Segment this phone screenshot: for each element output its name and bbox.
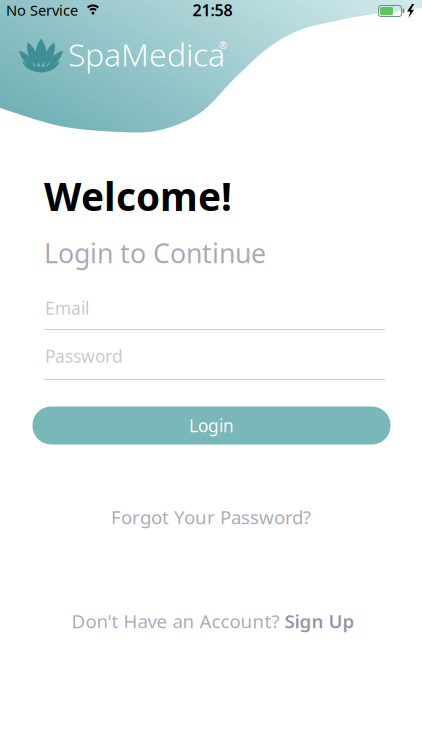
staticText: No Service (6, 0, 78, 20)
staticText: Password (45, 344, 123, 367)
staticText: SpaMedica (68, 33, 225, 75)
staticText: Email (45, 296, 89, 319)
button[interactable]: Login (32, 406, 390, 444)
staticText: 21:58 (192, 0, 232, 21)
button[interactable]: Don't Have an Account? (71, 609, 354, 633)
staticText: Sign Up (284, 609, 354, 633)
staticText: ® (218, 38, 227, 52)
staticText: Forgot Your Password? (111, 505, 311, 529)
staticText: Welcome! (44, 170, 232, 222)
button[interactable]: Forgot Your Password? (111, 505, 311, 529)
staticText: Login to Continue (44, 235, 266, 271)
staticText: Login (189, 414, 234, 437)
staticText: Don't Have an Account? (71, 609, 279, 633)
